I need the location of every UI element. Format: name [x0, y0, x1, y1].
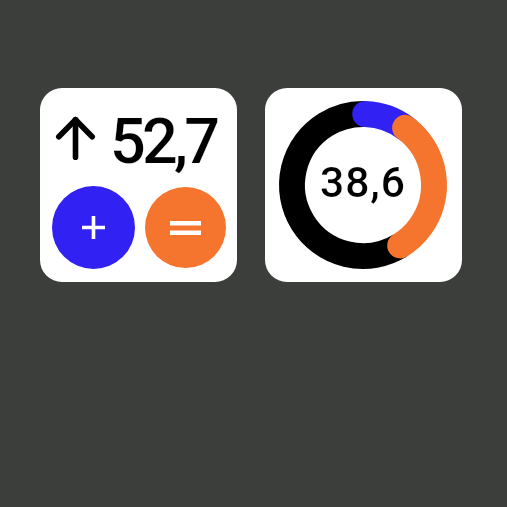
button[interactable]: Trend up: [40, 88, 237, 282]
button[interactable]: 38,6: [265, 88, 462, 282]
other: Trend up: [56, 117, 95, 160]
button[interactable]: Add: [52, 186, 135, 269]
button[interactable]: Equals: [145, 187, 226, 268]
staticText: 52,7: [110, 105, 217, 179]
staticText: 38,6: [320, 158, 406, 208]
